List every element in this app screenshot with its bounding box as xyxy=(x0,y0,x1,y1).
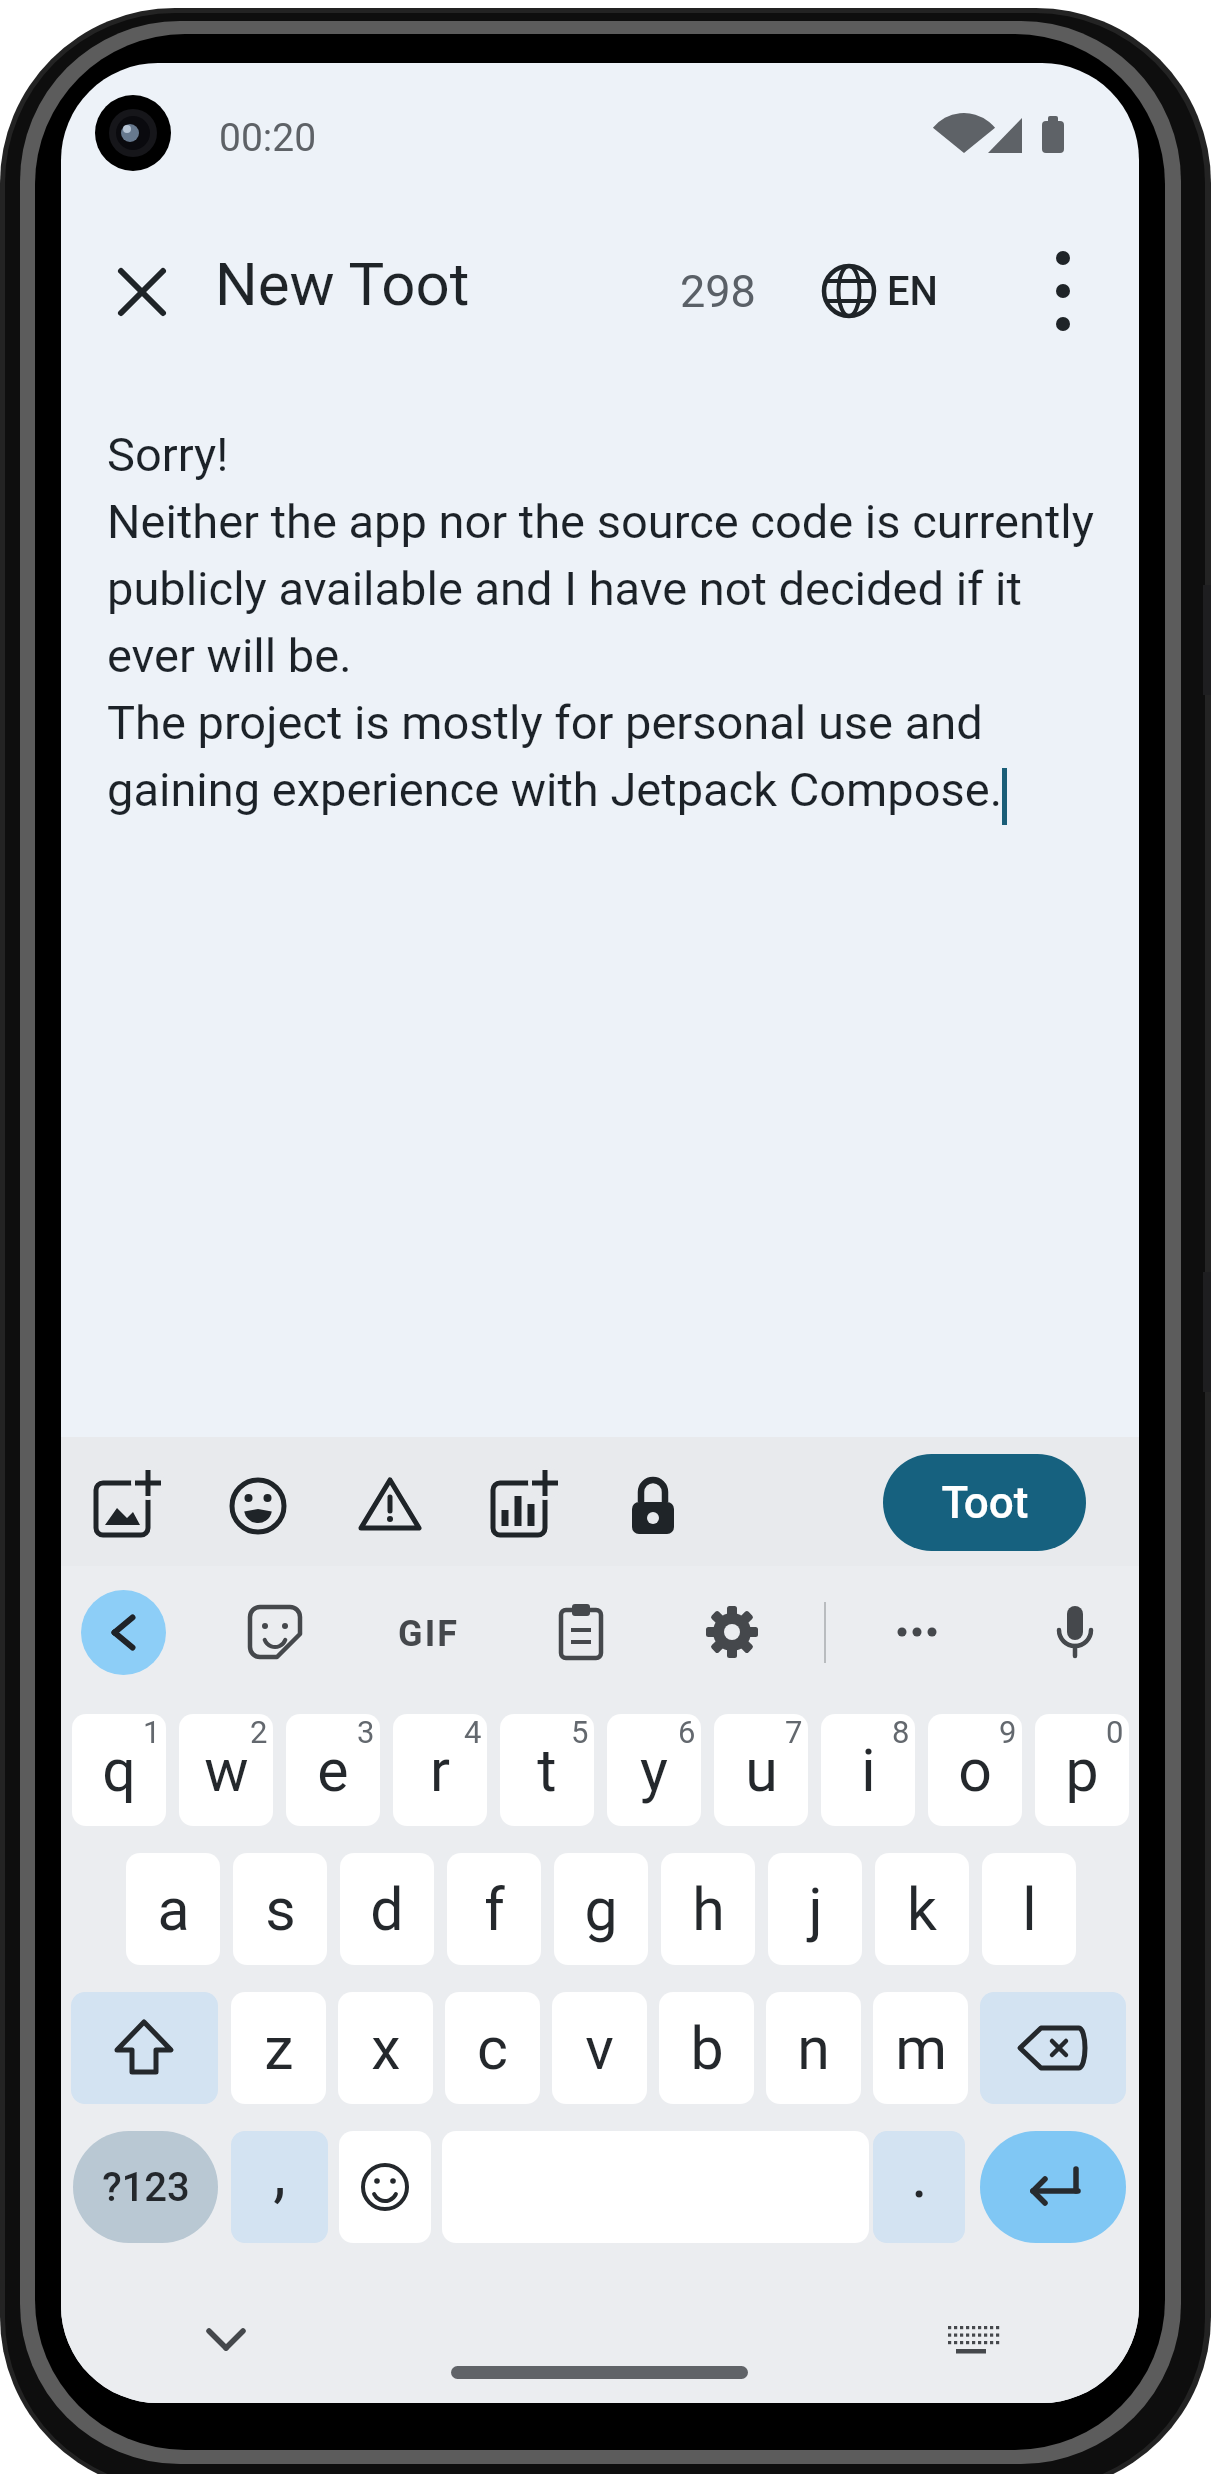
staticText: 5 xyxy=(571,1714,589,1750)
button[interactable]: EN xyxy=(803,249,963,333)
staticText: GIF xyxy=(398,1613,459,1655)
staticText: l xyxy=(1022,1875,1037,1944)
staticText: j xyxy=(808,1875,823,1944)
staticText: , xyxy=(273,2136,286,2211)
staticText: r xyxy=(430,1736,450,1805)
staticText: 2 xyxy=(250,1714,268,1750)
staticText: k xyxy=(907,1875,937,1944)
button[interactable]: n xyxy=(766,1992,861,2104)
button[interactable]: j xyxy=(768,1853,862,1965)
button[interactable]: y xyxy=(607,1714,701,1826)
staticText: o xyxy=(958,1736,992,1805)
staticText: n xyxy=(797,2014,830,2083)
button[interactable]: m xyxy=(873,1992,968,2104)
button[interactable]: a xyxy=(126,1853,220,1965)
button[interactable]: o xyxy=(928,1714,1022,1826)
button[interactable]: t xyxy=(500,1714,594,1826)
button[interactable]: u xyxy=(714,1714,808,1826)
button[interactable]: . xyxy=(873,2131,965,2243)
button[interactable]: q xyxy=(72,1714,166,1826)
staticText: i xyxy=(861,1736,876,1805)
button[interactable]: c xyxy=(445,1992,540,2104)
staticText: 8 xyxy=(892,1714,910,1750)
button[interactable]: GIF xyxy=(376,1606,480,1662)
button[interactable] xyxy=(109,259,175,325)
staticText: EN xyxy=(887,268,939,315)
button[interactable]: z xyxy=(231,1992,326,2104)
button[interactable] xyxy=(81,1590,166,1675)
staticText: s xyxy=(265,1875,296,1944)
staticText: 00:20 xyxy=(219,115,317,161)
button[interactable] xyxy=(477,1461,567,1551)
button[interactable]: x xyxy=(338,1992,433,2104)
staticText: p xyxy=(1065,1736,1099,1805)
staticText: d xyxy=(370,1875,404,1944)
button[interactable] xyxy=(339,2131,431,2243)
staticText: 7 xyxy=(785,1714,803,1750)
staticText: Sorry! Neither the app nor the source co… xyxy=(107,427,1095,818)
button[interactable] xyxy=(692,1592,772,1672)
button[interactable] xyxy=(980,1992,1126,2104)
staticText: 0 xyxy=(1106,1714,1124,1750)
staticText: x xyxy=(371,2014,401,2083)
staticText: a xyxy=(157,1875,190,1944)
button[interactable] xyxy=(1033,238,1093,344)
staticText: . xyxy=(911,2138,928,2213)
button[interactable] xyxy=(541,1592,621,1672)
button[interactable] xyxy=(980,2131,1126,2243)
staticText: 1 xyxy=(143,1714,161,1750)
staticText: Toot xyxy=(941,1477,1029,1529)
button[interactable]: , xyxy=(231,2131,328,2243)
staticText: w xyxy=(204,1736,249,1805)
button[interactable]: v xyxy=(552,1992,647,2104)
button[interactable] xyxy=(235,1592,315,1672)
staticText: 6 xyxy=(678,1714,696,1750)
button[interactable] xyxy=(877,1592,957,1672)
staticText: t xyxy=(537,1736,557,1805)
staticText: m xyxy=(895,2014,947,2083)
button[interactable]: f xyxy=(447,1853,541,1965)
staticText: e xyxy=(317,1736,349,1805)
button[interactable] xyxy=(213,1461,303,1551)
button[interactable]: d xyxy=(340,1853,434,1965)
staticText: z xyxy=(264,2014,294,2083)
staticText: h xyxy=(692,1875,725,1944)
button[interactable] xyxy=(196,2308,256,2368)
staticText: ?123 xyxy=(102,2164,190,2211)
staticText: New Toot xyxy=(215,249,470,319)
button[interactable]: p xyxy=(1035,1714,1129,1826)
button[interactable]: Toot xyxy=(883,1454,1086,1551)
button[interactable] xyxy=(941,2310,1001,2370)
button[interactable]: s xyxy=(233,1853,327,1965)
button[interactable]: e xyxy=(286,1714,380,1826)
button[interactable] xyxy=(71,1992,218,2104)
staticText: g xyxy=(584,1875,618,1944)
staticText: b xyxy=(690,2014,724,2083)
button[interactable] xyxy=(345,1461,435,1551)
button[interactable]: r xyxy=(393,1714,487,1826)
staticText: 4 xyxy=(464,1714,482,1750)
button[interactable]: h xyxy=(661,1853,755,1965)
button[interactable]: ?123 xyxy=(73,2131,218,2243)
button[interactable]: k xyxy=(875,1853,969,1965)
button[interactable]: i xyxy=(821,1714,915,1826)
button[interactable] xyxy=(1035,1592,1115,1672)
staticText: 298 xyxy=(680,265,756,318)
button[interactable]: g xyxy=(554,1853,648,1965)
button[interactable]: l xyxy=(982,1853,1076,1965)
staticText: 9 xyxy=(999,1714,1017,1750)
button[interactable]: w xyxy=(179,1714,273,1826)
staticText: y xyxy=(640,1736,668,1805)
staticText: c xyxy=(477,2014,508,2083)
staticText: f xyxy=(484,1875,505,1944)
button[interactable]: b xyxy=(659,1992,754,2104)
staticText: v xyxy=(585,2014,614,2083)
button[interactable] xyxy=(608,1461,698,1551)
staticText: u xyxy=(745,1736,778,1805)
staticText: q xyxy=(102,1736,136,1805)
staticText: 3 xyxy=(357,1714,375,1750)
button[interactable] xyxy=(80,1461,170,1551)
